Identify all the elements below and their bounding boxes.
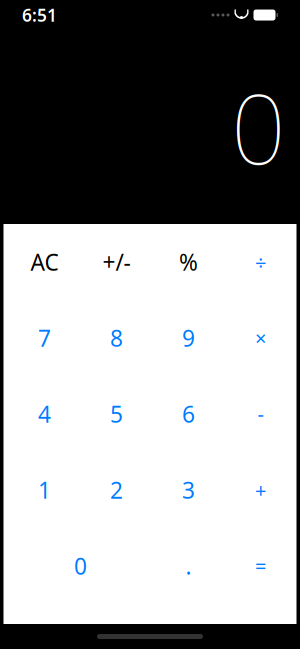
staticText: 5 <box>110 399 123 429</box>
button[interactable]: 0 <box>8 528 152 604</box>
staticText: 1 <box>38 475 51 505</box>
staticText: 4 <box>38 399 51 429</box>
staticText: +/- <box>102 247 130 277</box>
button[interactable]: 7 <box>8 300 80 376</box>
staticText: - <box>257 401 263 427</box>
staticText: × <box>255 325 266 351</box>
staticText: 7 <box>38 323 51 353</box>
button[interactable]: % <box>152 224 224 300</box>
button[interactable]: 5 <box>80 376 152 452</box>
button[interactable]: 1 <box>8 452 80 528</box>
button[interactable]: 4 <box>8 376 80 452</box>
staticText: + <box>255 477 266 503</box>
staticText: 8 <box>110 323 123 353</box>
button[interactable]: 9 <box>152 300 224 376</box>
button[interactable]: +/- <box>80 224 152 300</box>
staticText: . <box>185 551 191 581</box>
staticText: 0 <box>74 551 87 581</box>
staticText: AC <box>30 247 58 277</box>
button[interactable]: AC <box>8 224 80 300</box>
button[interactable]: 2 <box>80 452 152 528</box>
button[interactable]: 6 <box>152 376 224 452</box>
button[interactable]: - <box>224 376 296 452</box>
button[interactable]: 3 <box>152 452 224 528</box>
staticText: 9 <box>182 323 195 353</box>
button[interactable]: = <box>224 528 296 604</box>
staticText: ÷ <box>255 249 266 275</box>
button[interactable]: + <box>224 452 296 528</box>
button[interactable]: ÷ <box>224 224 296 300</box>
staticText: 6 <box>182 399 195 429</box>
button[interactable]: . <box>152 528 224 604</box>
staticText: 2 <box>110 475 123 505</box>
staticText: 0 <box>231 63 286 191</box>
staticText: 3 <box>182 475 195 505</box>
staticText: % <box>179 247 198 277</box>
staticText: 6:51 <box>22 3 57 26</box>
button[interactable]: 8 <box>80 300 152 376</box>
button[interactable]: × <box>224 300 296 376</box>
staticText: = <box>255 553 266 579</box>
